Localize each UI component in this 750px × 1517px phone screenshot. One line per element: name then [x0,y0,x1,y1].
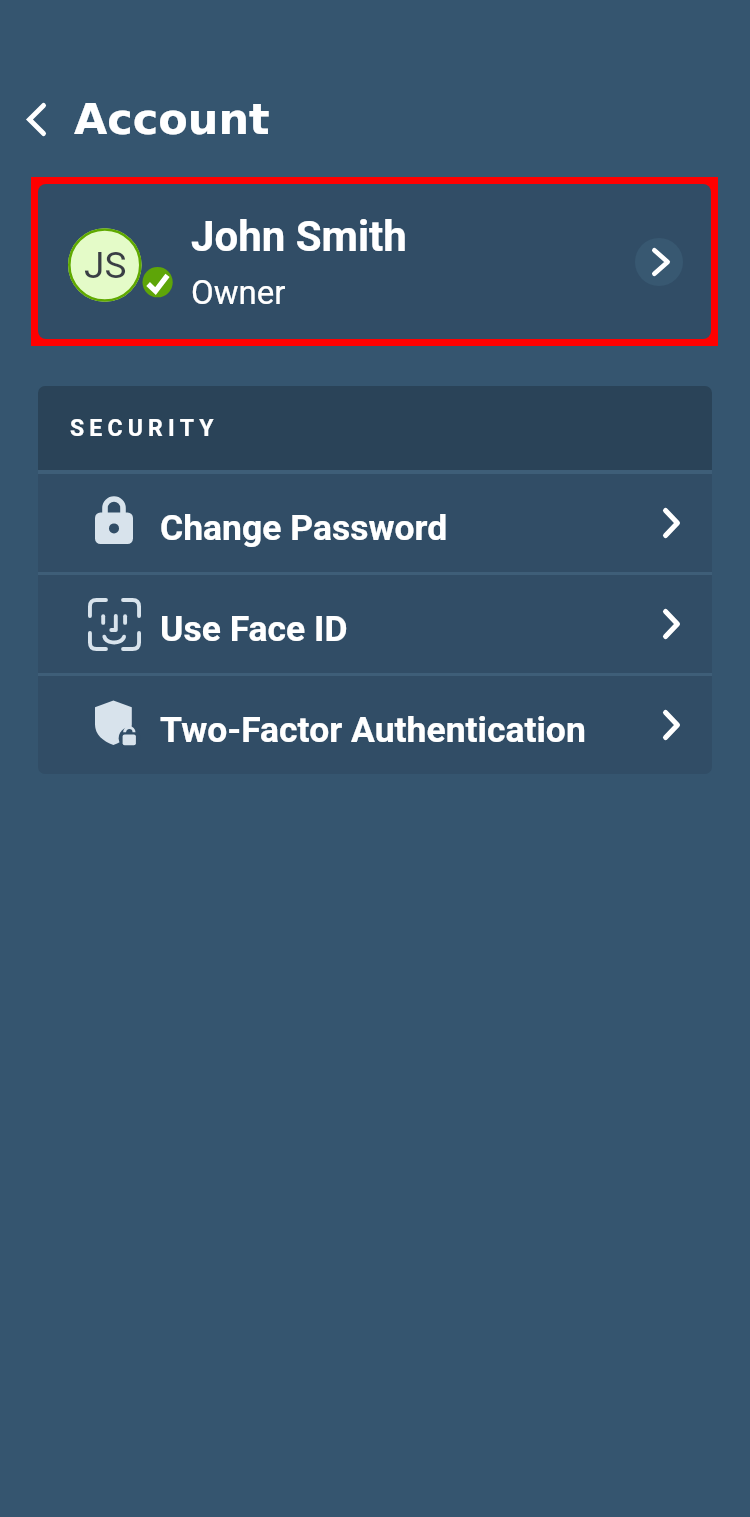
staticText: SECURITY [70,415,219,442]
staticText: JS [84,244,127,287]
button[interactable]: Two-Factor Authentication [38,676,712,774]
staticText: Two-Factor Authentication [160,709,586,751]
button[interactable]: Back [11,94,61,144]
staticText: Owner [191,273,286,312]
button[interactable]: Change Password [38,474,712,572]
button[interactable]: JS [38,184,711,339]
staticText: Account [74,94,270,144]
staticText: Use Face ID [160,608,348,650]
button[interactable]: Use Face ID [38,575,712,673]
staticText: John Smith [191,212,407,261]
staticText: Change Password [160,507,448,549]
